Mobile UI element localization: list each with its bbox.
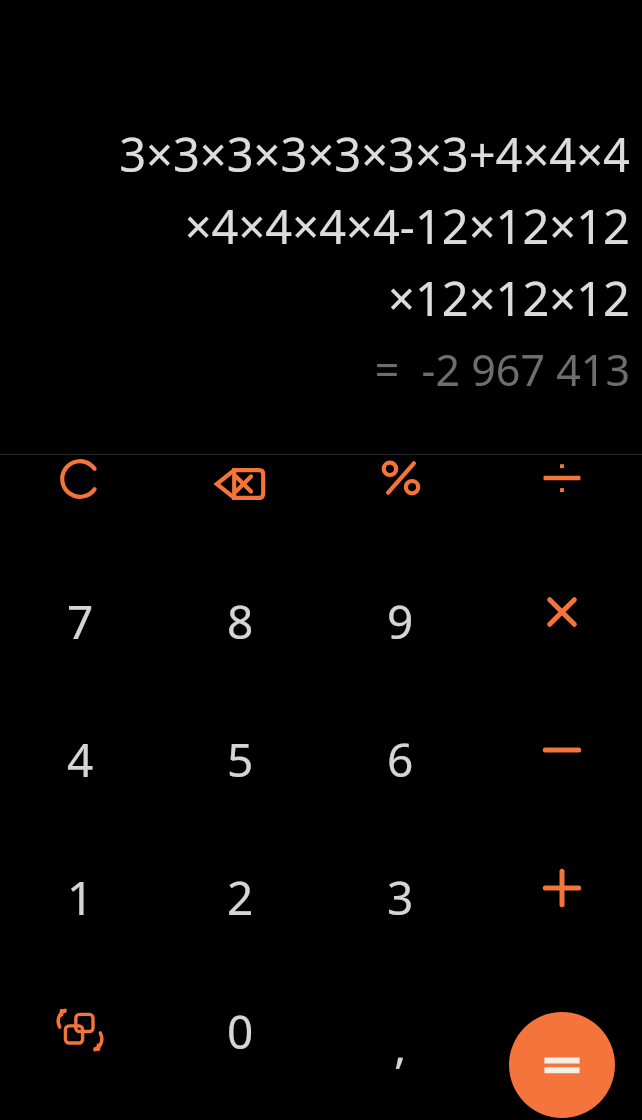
- other: Multiply: [540, 590, 584, 634]
- staticText: ,: [394, 1014, 407, 1077]
- staticText: 5: [227, 728, 254, 791]
- staticText: 3×3×3×3×3×3×3+4×4×4: [119, 122, 630, 186]
- other: Clear: [56, 455, 104, 503]
- staticText: 1: [67, 866, 94, 929]
- staticText: = -2 967 413: [374, 340, 630, 399]
- button[interactable]: ,: [320, 1004, 481, 1067]
- staticText: 0: [227, 1000, 254, 1063]
- button[interactable]: Equals: [509, 1012, 615, 1118]
- button[interactable]: Clear: [0, 455, 160, 503]
- staticText: 4: [67, 728, 94, 791]
- button[interactable]: 4: [0, 728, 160, 791]
- button[interactable]: Plus: [481, 866, 642, 910]
- button[interactable]: 3: [320, 866, 481, 929]
- staticText: 2: [227, 866, 254, 929]
- staticText: ×12×12×12: [388, 266, 630, 330]
- staticText: 6: [387, 728, 414, 791]
- button[interactable]: 2: [160, 866, 320, 929]
- button[interactable]: Minus: [481, 728, 642, 772]
- button[interactable]: 5: [160, 728, 320, 791]
- staticText: 8: [227, 590, 254, 653]
- staticText: 3: [387, 866, 414, 929]
- button[interactable]: Divide: [481, 455, 642, 501]
- other: Backspace: [211, 455, 269, 513]
- button[interactable]: 1: [0, 866, 160, 929]
- staticText: 7: [67, 590, 94, 653]
- other: Percent: [378, 455, 424, 501]
- button[interactable]: 9: [320, 590, 481, 653]
- staticText: ×4×4×4×4-12×12×12: [184, 194, 630, 258]
- other: Plus: [540, 866, 584, 910]
- button[interactable]: Percent: [320, 455, 481, 501]
- other: Minus: [540, 728, 584, 772]
- button[interactable]: 0: [160, 1004, 320, 1067]
- other: Unit converter: [54, 1004, 106, 1056]
- staticText: 9: [387, 590, 414, 653]
- other: Divide: [539, 455, 585, 501]
- button[interactable]: Backspace: [160, 455, 320, 513]
- button[interactable]: Unit converter: [0, 1004, 160, 1056]
- button[interactable]: 7: [0, 590, 160, 653]
- button[interactable]: 8: [160, 590, 320, 653]
- button[interactable]: 6: [320, 728, 481, 791]
- button[interactable]: Multiply: [481, 590, 642, 634]
